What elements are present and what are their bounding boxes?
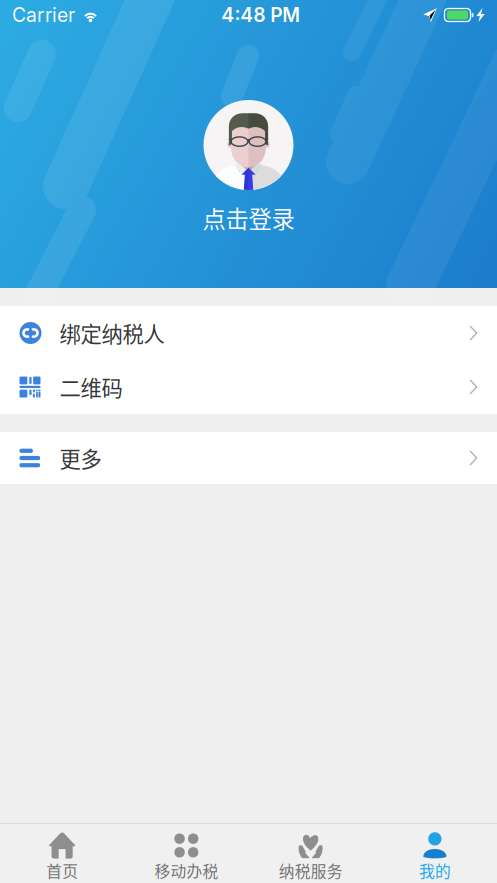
button[interactable]: 点击登录 [0, 100, 497, 235]
staticText: 纳税服务 [279, 859, 343, 882]
staticText: 二维码 [59, 372, 122, 402]
staticText: 绑定纳税人 [59, 318, 164, 348]
staticText: 移动办税 [154, 859, 218, 882]
button[interactable]: 移动办税 [124, 824, 248, 883]
button[interactable]: 绑定纳税人 [0, 306, 497, 360]
button[interactable]: 我的 [373, 824, 497, 883]
staticText: 点击登录 [202, 201, 294, 235]
button[interactable]: 二维码 [0, 360, 497, 414]
button[interactable]: 纳税服务 [248, 824, 373, 883]
staticText: 4:48 PM [221, 3, 300, 27]
button[interactable]: 更多 [0, 432, 497, 484]
button[interactable]: 首页 [0, 824, 124, 883]
staticText: 首页 [46, 859, 78, 882]
staticText: Carrier [12, 3, 75, 27]
staticText: 更多 [59, 443, 101, 473]
staticText: 我的 [419, 859, 451, 882]
